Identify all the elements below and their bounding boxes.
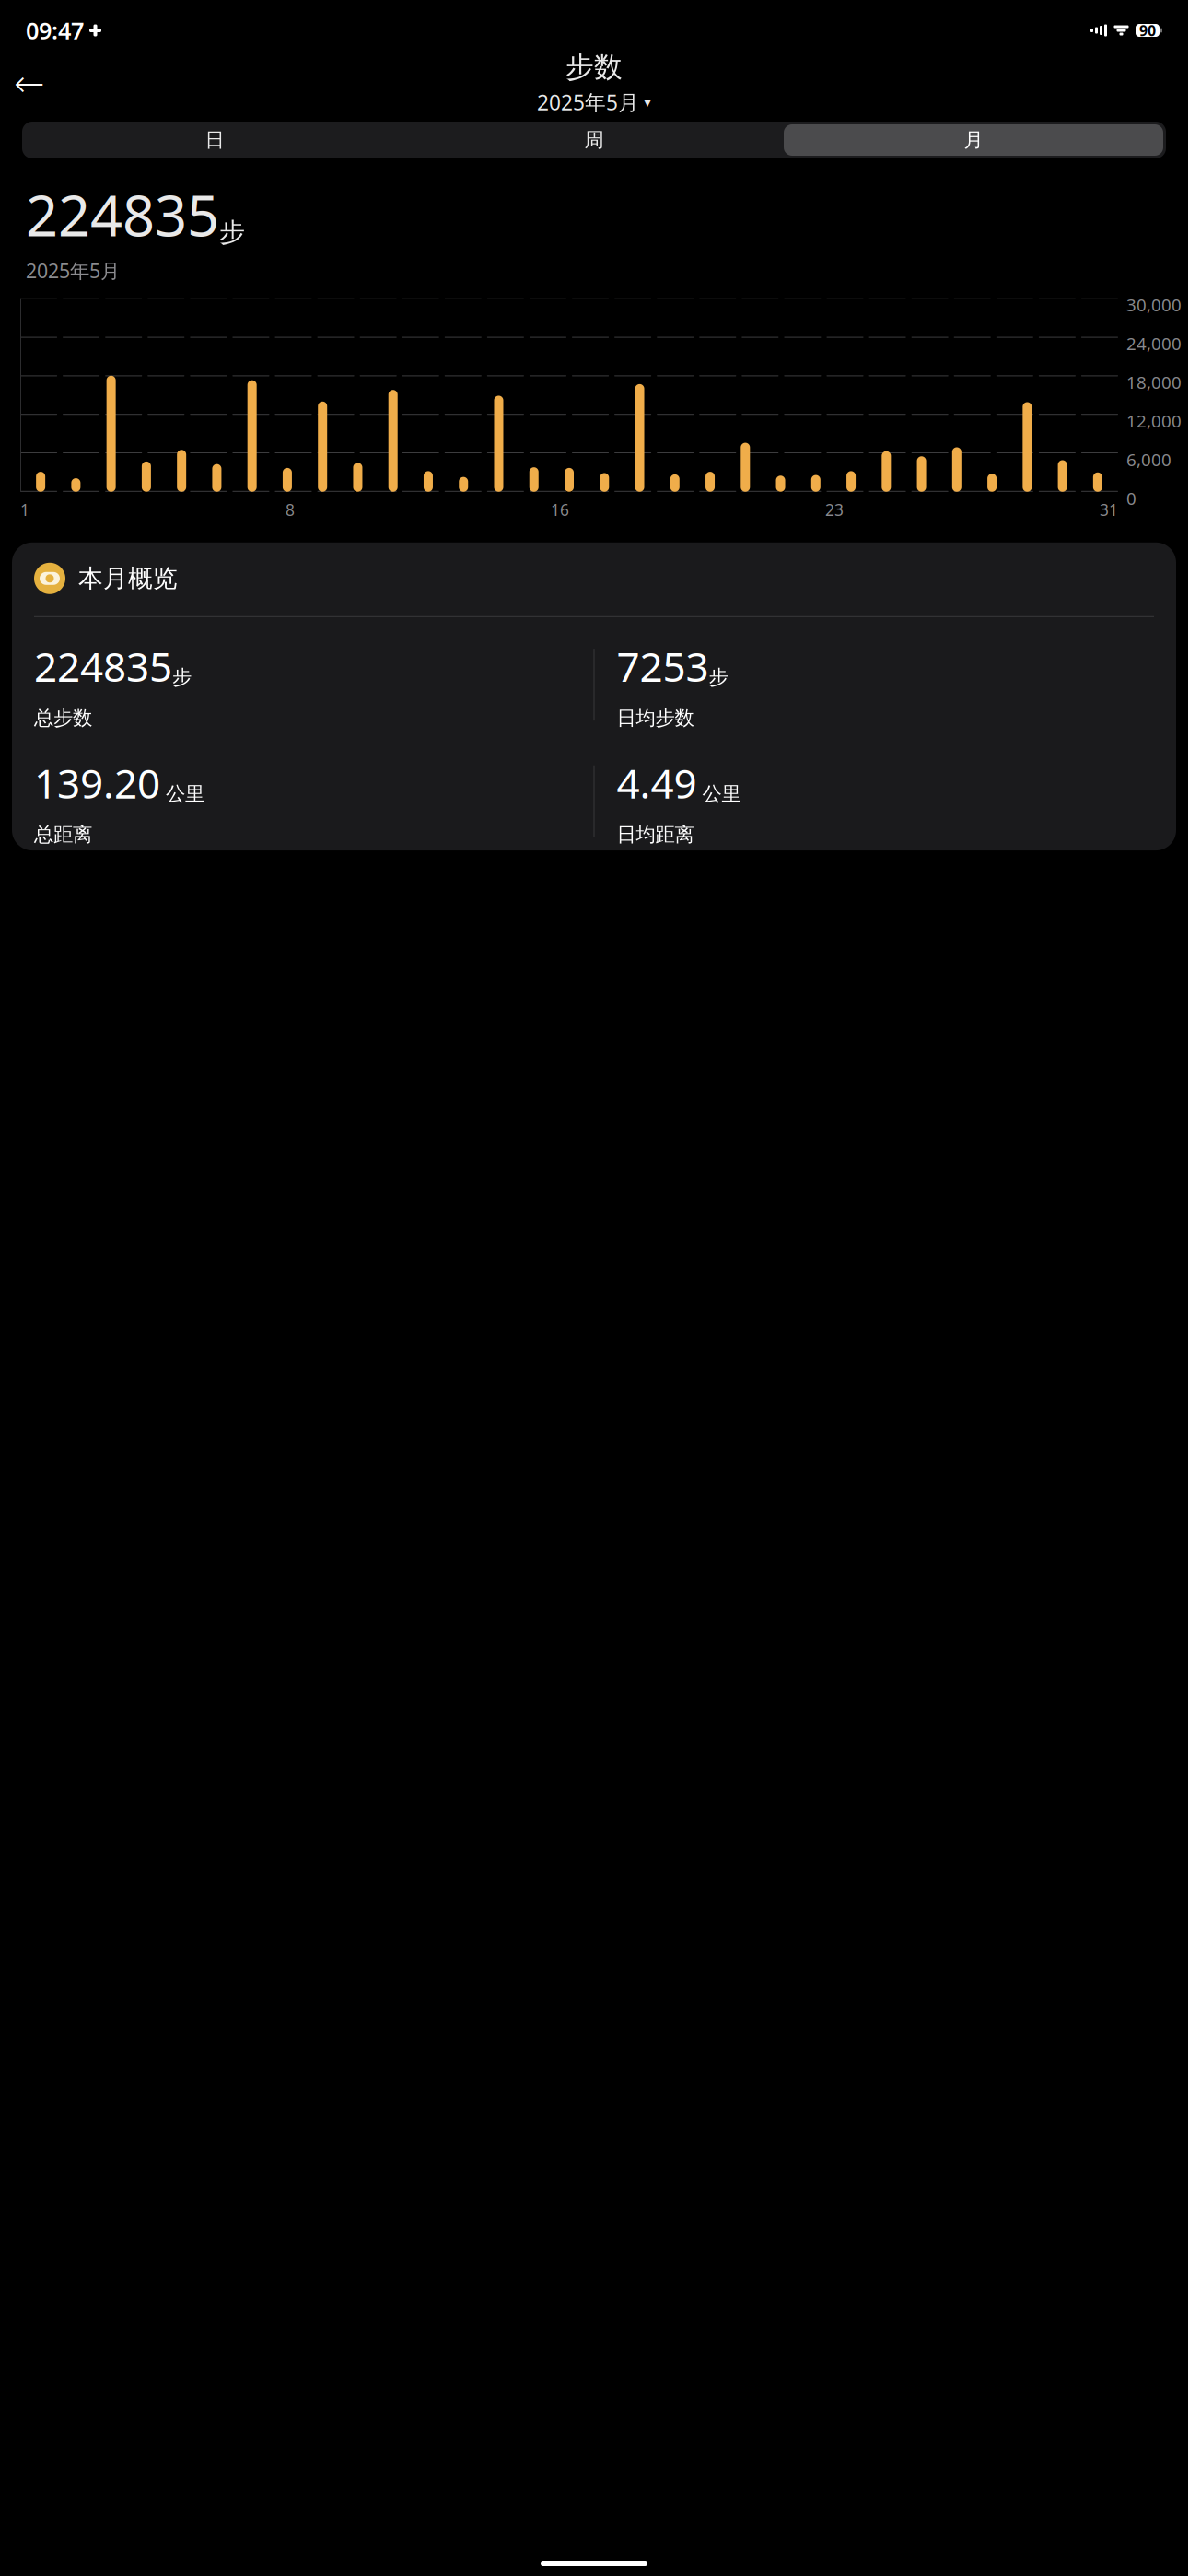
staticText: 90 [1139, 21, 1156, 40]
staticText: 2025年5月 [537, 88, 639, 116]
staticText: 139.20 [34, 756, 160, 810]
staticText: 总距离 [34, 823, 92, 847]
staticText: 224835 [34, 639, 172, 693]
staticText: 步 [219, 217, 245, 248]
button[interactable]: 周 [404, 124, 784, 156]
staticText: 24,000 [1126, 332, 1182, 355]
button[interactable]: Back [9, 64, 50, 104]
staticText: 步 [709, 665, 728, 689]
staticText: 日均距离 [617, 823, 694, 847]
staticText: 09:47 [26, 15, 84, 46]
staticText: 12,000 [1126, 409, 1182, 432]
staticText: ← [14, 63, 45, 105]
staticText: 8 [286, 499, 295, 520]
staticText: 本月概览 [78, 563, 178, 594]
staticText: 月 [964, 128, 983, 152]
button[interactable]: 月 [784, 124, 1163, 156]
staticText: 4.49 [617, 756, 697, 810]
staticText: 公里 [702, 782, 741, 806]
staticText: 1 [20, 499, 29, 520]
staticText: 日 [205, 128, 224, 152]
button[interactable]: 2025年5月 [531, 86, 657, 118]
staticText: 公里 [166, 782, 204, 806]
staticText: 0 [1126, 487, 1137, 510]
staticText: 30,000 [1126, 293, 1182, 316]
staticText: 31 [1100, 499, 1118, 520]
staticText: 224835 [26, 177, 219, 252]
staticText: 2025年5月 [26, 257, 120, 283]
staticText: 日均步数 [617, 706, 694, 730]
staticText: 23 [825, 499, 844, 520]
button[interactable]: 日 [25, 124, 404, 156]
staticText: 步 [172, 665, 192, 689]
staticText: ▾ [644, 94, 651, 111]
staticText: 16 [551, 499, 569, 520]
staticText: 总步数 [34, 706, 92, 730]
staticText: 6,000 [1126, 448, 1172, 471]
staticText: 7253 [617, 639, 709, 693]
staticText: 周 [584, 128, 604, 152]
staticText: 18,000 [1126, 371, 1182, 394]
staticText: 步数 [565, 50, 623, 85]
